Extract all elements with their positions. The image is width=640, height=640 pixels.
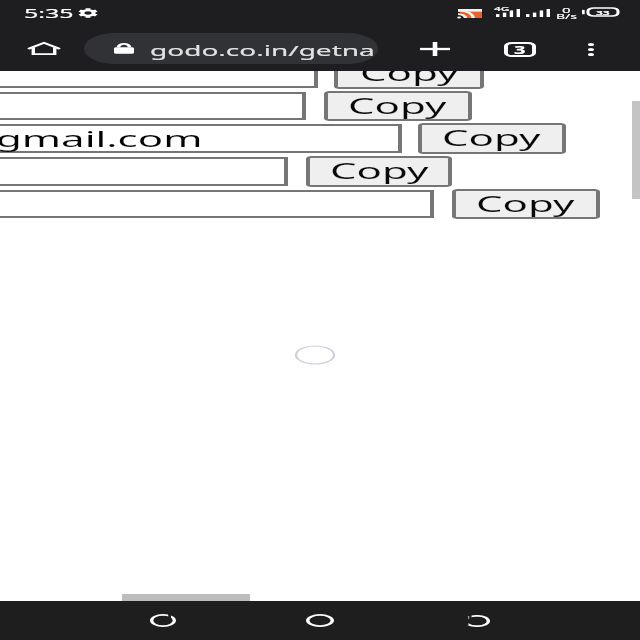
button[interactable]: Text field	[0, 92, 306, 120]
staticText: 4G	[494, 5, 510, 13]
staticText: B/s	[556, 12, 578, 22]
staticText: gmail.com	[0, 125, 204, 154]
staticText: 33	[596, 9, 610, 17]
button[interactable]: Tabs	[496, 30, 544, 68]
staticText: Copy	[476, 190, 576, 219]
staticText: Copy	[348, 92, 448, 121]
staticText: Copy	[330, 157, 430, 186]
button[interactable]: Copy	[324, 91, 472, 121]
button[interactable]: Home page	[18, 30, 68, 66]
staticText: Copy	[442, 124, 542, 153]
button[interactable]: Text field	[0, 190, 434, 218]
button[interactable]: Text field	[0, 59, 318, 88]
staticText: Copy	[360, 59, 460, 88]
button[interactable]: Copy	[418, 123, 566, 154]
button[interactable]: New tab	[410, 30, 458, 68]
button[interactable]: Copy	[452, 189, 600, 219]
staticText: godo.co.in/getna	[150, 41, 376, 60]
button[interactable]: Text field	[0, 157, 288, 186]
button[interactable]: More options	[568, 30, 612, 68]
staticText: 3	[514, 43, 526, 57]
button[interactable]: Copy	[334, 58, 484, 89]
button[interactable]: Home	[296, 604, 344, 637]
button[interactable]: Text field	[0, 124, 402, 153]
staticText: 0	[562, 5, 572, 15]
staticText: 5:35	[24, 5, 74, 22]
button[interactable]: Copy	[306, 156, 452, 187]
button[interactable]: Recent apps	[452, 604, 500, 637]
button[interactable]: godo.co.in/getna	[84, 33, 378, 64]
button[interactable]: Back	[138, 604, 186, 637]
